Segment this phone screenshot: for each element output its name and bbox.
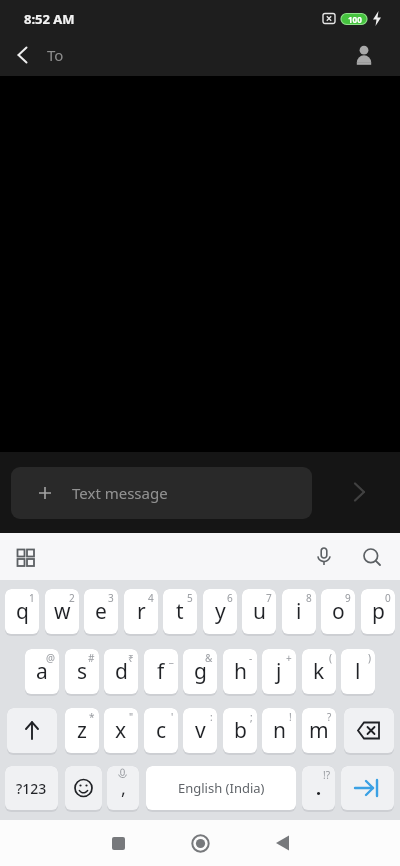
staticText: h	[234, 657, 247, 686]
staticText: 6	[227, 591, 233, 605]
staticText: 0	[385, 591, 391, 605]
staticText: #	[88, 651, 95, 665]
button[interactable]: y	[203, 589, 237, 636]
button[interactable]: m	[302, 708, 336, 755]
button[interactable]	[65, 766, 102, 812]
button[interactable]: o	[321, 589, 355, 636]
button[interactable]	[9, 542, 41, 572]
button[interactable]: q	[5, 589, 39, 636]
button[interactable]: s	[65, 649, 99, 696]
staticText: @	[46, 651, 55, 665]
button[interactable]	[344, 708, 394, 755]
staticText: m	[309, 716, 329, 745]
button[interactable]	[103, 828, 133, 858]
button[interactable]: g	[183, 649, 217, 696]
staticText: c	[156, 716, 167, 745]
button[interactable]: d	[104, 649, 138, 696]
staticText: ;	[250, 710, 253, 724]
staticText: +	[286, 651, 292, 665]
staticText: e	[95, 597, 107, 626]
staticText: u	[253, 597, 266, 626]
staticText: l	[355, 657, 361, 686]
staticText: '	[171, 710, 174, 724]
button[interactable]: Text message	[11, 467, 312, 519]
staticText: d	[115, 657, 128, 686]
button[interactable]: a	[25, 649, 59, 696]
staticText: To	[47, 45, 64, 65]
button[interactable]: w	[45, 589, 79, 636]
staticText: t	[176, 597, 184, 626]
button[interactable]	[185, 828, 215, 858]
staticText: ₹	[128, 651, 134, 665]
staticText: g	[194, 657, 207, 686]
button[interactable]: z	[65, 708, 99, 755]
staticText: Text message	[72, 483, 168, 503]
staticText: 2	[69, 591, 75, 605]
staticText: a	[36, 657, 48, 686]
staticText: r	[137, 597, 146, 626]
button[interactable]: x	[104, 708, 138, 755]
button[interactable]: ?123	[5, 766, 58, 812]
button[interactable]: .	[302, 766, 335, 812]
button[interactable]: b	[223, 708, 257, 755]
staticText: 5	[187, 591, 193, 605]
button[interactable]: n	[262, 708, 296, 755]
staticText: v	[195, 716, 206, 745]
button[interactable]: u	[242, 589, 276, 636]
staticText: *	[89, 710, 95, 724]
staticText: j	[276, 657, 282, 686]
button[interactable]: v	[183, 708, 217, 755]
button[interactable]: p	[361, 589, 395, 636]
button[interactable]: t	[163, 589, 197, 636]
staticText: )	[368, 651, 371, 665]
staticText: n	[273, 716, 286, 745]
button[interactable]	[347, 38, 381, 72]
staticText: w	[54, 597, 71, 626]
staticText: :	[210, 710, 213, 724]
staticText: p	[372, 597, 385, 626]
button[interactable]: c	[144, 708, 178, 755]
staticText: 8	[306, 591, 312, 605]
button[interactable]: j	[262, 649, 296, 696]
button[interactable]: i	[282, 589, 316, 636]
staticText: 8:52 AM	[24, 10, 75, 28]
staticText: 100	[348, 14, 362, 25]
staticText: (	[329, 651, 332, 665]
button[interactable]	[7, 708, 57, 755]
staticText: !?	[323, 768, 331, 782]
button[interactable]	[267, 828, 297, 858]
button[interactable]: f	[144, 649, 178, 696]
staticText: 4	[148, 591, 154, 605]
button[interactable]	[6, 38, 40, 72]
button[interactable]	[146, 766, 296, 812]
staticText: q	[16, 597, 29, 626]
button[interactable]: r	[124, 589, 158, 636]
staticText: o	[332, 597, 345, 626]
staticText: 3	[108, 591, 114, 605]
staticText: ?	[327, 710, 332, 724]
staticText: 1	[29, 591, 35, 605]
button[interactable]: l	[341, 649, 375, 696]
staticText: ?123	[16, 779, 47, 798]
staticText: 9	[345, 591, 351, 605]
staticText: s	[77, 657, 88, 686]
button[interactable]	[336, 469, 382, 515]
staticText: k	[313, 657, 325, 686]
staticText: z	[77, 716, 87, 745]
button[interactable]: e	[84, 589, 118, 636]
staticText: English (India)	[178, 779, 265, 797]
staticText: x	[115, 716, 127, 745]
staticText: 7	[266, 591, 272, 605]
button[interactable]	[341, 766, 394, 812]
button[interactable]: ,	[107, 766, 139, 812]
staticText: .	[316, 776, 322, 801]
staticText: f	[157, 657, 165, 686]
staticText: b	[234, 716, 247, 745]
staticText: ,	[121, 776, 126, 801]
button[interactable]: h	[223, 649, 257, 696]
button[interactable]: k	[302, 649, 336, 696]
staticText: "	[129, 710, 134, 724]
button[interactable]	[308, 542, 340, 572]
button[interactable]: To	[47, 45, 64, 65]
button[interactable]	[356, 542, 388, 572]
